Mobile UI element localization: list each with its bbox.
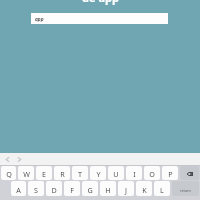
button[interactable]: F	[64, 181, 80, 196]
button[interactable]: Q	[1, 166, 16, 180]
button[interactable]: S	[28, 181, 44, 196]
staticText: L	[160, 185, 164, 195]
staticText: de app	[82, 0, 119, 5]
button[interactable]: U	[108, 166, 124, 180]
staticText: E	[42, 169, 46, 179]
button[interactable]: D	[46, 181, 62, 196]
staticText: U	[113, 169, 119, 179]
staticText: F	[70, 185, 74, 195]
button[interactable]: I	[126, 166, 142, 180]
staticText: O	[149, 169, 155, 179]
button[interactable]: Y	[90, 166, 106, 180]
button[interactable]: P	[162, 166, 178, 180]
staticText: T	[78, 169, 82, 179]
staticText: D	[51, 185, 57, 195]
button[interactable]: G	[82, 181, 98, 196]
button[interactable]: L	[154, 181, 170, 196]
button[interactable]: R	[54, 166, 70, 180]
button[interactable]: E	[36, 166, 52, 180]
button[interactable]: W	[18, 166, 34, 180]
staticText: return	[180, 188, 191, 193]
button[interactable]: J	[118, 181, 134, 196]
staticText: H	[105, 185, 111, 195]
staticText: K	[142, 185, 147, 195]
button[interactable]: return	[172, 181, 199, 196]
button[interactable]: Previous field	[2, 154, 13, 165]
staticText: A	[16, 185, 21, 195]
button[interactable]: A	[11, 181, 26, 196]
staticText: S	[34, 185, 38, 195]
button[interactable]: app	[31, 13, 168, 24]
staticText: Q	[6, 169, 12, 179]
staticText: P	[168, 169, 173, 179]
button[interactable]: Backspace	[180, 166, 199, 180]
staticText: Y	[96, 169, 101, 179]
button[interactable]: K	[136, 181, 152, 196]
staticText: R	[60, 169, 65, 179]
button[interactable]: H	[100, 181, 116, 196]
staticText: I	[133, 169, 136, 179]
staticText: W	[23, 169, 30, 179]
staticText: J	[125, 185, 127, 195]
button[interactable]: Next field	[14, 154, 25, 165]
staticText: app	[35, 16, 44, 23]
button[interactable]: O	[144, 166, 160, 180]
button[interactable]: T	[72, 166, 88, 180]
staticText: G	[87, 185, 93, 195]
